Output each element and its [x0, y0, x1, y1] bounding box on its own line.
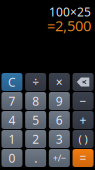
- button[interactable]: 3: [49, 130, 70, 148]
- button[interactable]: −: [72, 92, 93, 110]
- staticText: 2: [32, 131, 39, 147]
- button[interactable]: 6: [49, 111, 70, 129]
- staticText: C: [8, 74, 16, 90]
- staticText: 1: [8, 131, 15, 147]
- staticText: +/−: [53, 152, 66, 164]
- staticText: =: [79, 150, 86, 166]
- button[interactable]: .: [25, 149, 46, 167]
- staticText: 4: [8, 112, 15, 128]
- staticText: =2,500: [47, 16, 91, 35]
- staticText: 6: [56, 112, 63, 128]
- button[interactable]: C: [1, 73, 22, 91]
- button[interactable]: 2: [25, 130, 46, 148]
- button[interactable]: 8: [25, 92, 46, 110]
- button[interactable]: 5: [25, 111, 46, 129]
- staticText: −: [79, 93, 86, 109]
- staticText: 0: [8, 150, 15, 166]
- button[interactable]: 7: [1, 92, 22, 110]
- staticText: 9: [56, 93, 63, 109]
- staticText: 8: [32, 93, 39, 109]
- button[interactable]: ×: [49, 73, 70, 91]
- button[interactable]: +: [72, 111, 93, 129]
- staticText: 7: [8, 93, 15, 109]
- button[interactable]: =: [72, 149, 93, 167]
- staticText: +: [79, 112, 86, 128]
- button[interactable]: ÷: [25, 73, 46, 91]
- button[interactable]: Delete: [72, 73, 93, 91]
- staticText: 5: [32, 112, 39, 128]
- button[interactable]: 4: [1, 111, 22, 129]
- staticText: .: [34, 150, 37, 166]
- button[interactable]: 0: [1, 149, 22, 167]
- staticText: ( ): [78, 132, 87, 146]
- staticText: ÷: [32, 74, 39, 90]
- button[interactable]: 1: [1, 130, 22, 148]
- staticText: ×: [56, 74, 63, 90]
- staticText: 3: [56, 131, 63, 147]
- button[interactable]: 9: [49, 92, 70, 110]
- button[interactable]: ( ): [72, 130, 93, 148]
- staticText: 100×25: [49, 4, 91, 20]
- button[interactable]: +/−: [49, 149, 70, 167]
